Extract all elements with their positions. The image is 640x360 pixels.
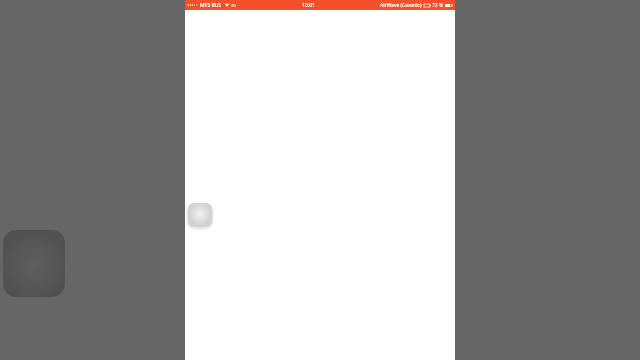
staticText: AirWave (Genetic)	[380, 2, 422, 9]
staticText: 10:01	[302, 2, 315, 9]
button[interactable]: Tile	[3, 230, 65, 297]
staticText: 3G	[231, 3, 237, 8]
staticText: 72 %	[432, 2, 444, 9]
button[interactable]: Open control	[188, 203, 212, 227]
staticText: MTS RUS	[200, 2, 222, 9]
